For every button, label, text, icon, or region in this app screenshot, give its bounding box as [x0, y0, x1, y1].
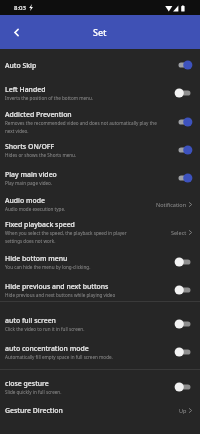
- staticText: Fixed playback speed: [5, 220, 75, 229]
- button[interactable]: Addicted Prevention: [0, 105, 200, 140]
- button[interactable]: Switch on: [170, 114, 196, 130]
- staticText: Automatically fill empty space in full s…: [5, 354, 113, 360]
- staticText: close gesture: [5, 379, 49, 388]
- staticText: Hide bottom menu: [5, 254, 68, 263]
- staticText: Shorts ON/OFF: [5, 142, 55, 151]
- button[interactable]: Notification: [0, 199, 192, 209]
- staticText: Left Handed: [5, 85, 46, 94]
- button[interactable]: Switch off: [170, 282, 196, 298]
- staticText: You can hide the menu by long-clicking.: [5, 264, 91, 270]
- staticText: Hide previous and next buttons while pla…: [5, 292, 116, 298]
- button[interactable]: Up: [0, 405, 192, 415]
- staticText: Gesture Direction: [5, 406, 63, 415]
- button[interactable]: auto concentration mode: [0, 339, 200, 365]
- button[interactable]: Switch on: [170, 170, 196, 186]
- button[interactable]: Switch off: [170, 254, 196, 270]
- staticText: Click the video to run it in full screen…: [5, 326, 85, 332]
- button[interactable]: Switch on: [170, 57, 196, 73]
- button[interactable]: Audio mode: [0, 191, 200, 217]
- staticText: Auto Skip: [5, 61, 37, 70]
- staticText: Play main video: [5, 170, 57, 179]
- staticText: Hides or shows the Shorts menu.: [5, 152, 77, 158]
- staticText: Audio mode execution type.: [5, 206, 66, 212]
- staticText: Notification: [156, 201, 187, 208]
- button[interactable]: Switch off: [170, 344, 196, 360]
- staticText: Up: [179, 407, 187, 414]
- button[interactable]: auto full screen: [0, 311, 200, 337]
- staticText: auto concentration mode: [5, 344, 89, 353]
- staticText: When you select the speed, the playback …: [5, 230, 138, 245]
- button[interactable]: Switch on: [170, 142, 196, 158]
- button[interactable]: Gesture Direction: [0, 401, 200, 419]
- button[interactable]: Hide bottom menu: [0, 249, 200, 275]
- staticText: Hide previous and next buttons: [5, 282, 109, 291]
- staticText: Audio mode: [5, 196, 45, 205]
- button[interactable]: Back: [5, 21, 27, 43]
- button[interactable]: Hide previous and next buttons: [0, 277, 200, 303]
- staticText: Slide quickly in full screen.: [5, 389, 62, 395]
- button[interactable]: Auto Skip: [0, 56, 200, 74]
- staticText: 8:03: [14, 4, 26, 12]
- staticText: Removes the recommended video and does n…: [5, 120, 165, 135]
- staticText: Set: [93, 26, 107, 38]
- staticText: Inverts the position of the bottom menu.: [5, 95, 94, 101]
- button[interactable]: Switch off: [170, 316, 196, 332]
- button[interactable]: Switch off: [170, 85, 196, 101]
- button[interactable]: Play main video: [0, 165, 200, 191]
- button[interactable]: Select: [0, 227, 192, 237]
- button[interactable]: Switch off: [170, 379, 196, 395]
- staticText: Addicted Prevention: [5, 110, 72, 119]
- staticText: auto full screen: [5, 316, 56, 325]
- button[interactable]: Fixed playback speed: [0, 215, 200, 250]
- button[interactable]: Shorts ON/OFF: [0, 137, 200, 163]
- button[interactable]: Left Handed: [0, 80, 200, 106]
- staticText: Play main page video.: [5, 180, 53, 186]
- staticText: Select: [171, 229, 187, 236]
- button[interactable]: close gesture: [0, 374, 200, 400]
